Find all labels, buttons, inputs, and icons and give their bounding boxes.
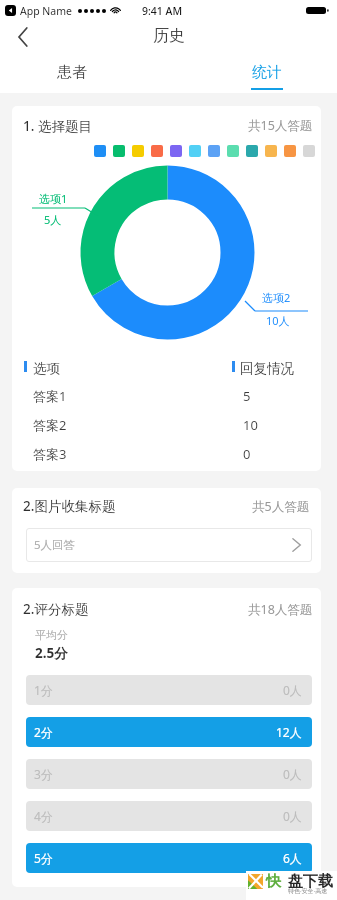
- staticText: 10: [243, 416, 258, 434]
- staticText: 0人: [283, 682, 302, 698]
- button[interactable]: 统计: [229, 58, 304, 93]
- staticText: 5人: [44, 212, 62, 227]
- button[interactable]: 2分: [26, 717, 312, 747]
- staticText: 5: [243, 387, 251, 405]
- staticText: 选项: [33, 360, 60, 377]
- button[interactable]: 5人回答: [26, 528, 312, 562]
- staticText: 答案1: [33, 387, 67, 405]
- staticText: 10人: [266, 313, 290, 328]
- staticText: 答案3: [33, 445, 67, 463]
- staticText: 回复情况: [240, 360, 294, 377]
- staticText: 5人回答: [34, 537, 76, 553]
- button[interactable]: 患者: [34, 58, 109, 93]
- staticText: 患者: [57, 63, 87, 82]
- staticText: 快: [266, 872, 281, 891]
- staticText: 2.5分: [35, 644, 68, 662]
- button[interactable]: Back: [9, 23, 37, 51]
- staticText: 2分: [34, 724, 53, 740]
- button[interactable]: 3分: [26, 759, 312, 789]
- staticText: 答案2: [33, 416, 67, 434]
- staticText: 0: [243, 445, 251, 463]
- button[interactable]: 5分: [26, 843, 312, 873]
- staticText: 12人: [276, 724, 302, 740]
- staticText: 9:41 AM: [142, 4, 183, 18]
- staticText: 历史: [153, 26, 185, 46]
- staticText: 选项1: [39, 191, 68, 206]
- button[interactable]: 4分: [26, 801, 312, 831]
- staticText: 6人: [283, 850, 302, 866]
- staticText: 2.评分标题: [23, 600, 89, 618]
- staticText: 0人: [283, 766, 302, 782]
- staticText: 统计: [252, 63, 282, 82]
- staticText: 0人: [283, 808, 302, 824]
- button[interactable]: 1分: [26, 675, 312, 705]
- staticText: 4分: [34, 808, 53, 824]
- staticText: 选项2: [262, 290, 291, 305]
- staticText: 盘下载: [288, 872, 333, 891]
- staticText: App Name: [20, 4, 72, 18]
- staticText: 特色·安全·高速: [288, 887, 328, 895]
- staticText: 5分: [34, 850, 53, 866]
- staticText: 1. 选择题目: [23, 117, 92, 135]
- staticText: 2.图片收集标题: [23, 497, 116, 515]
- staticText: 3分: [34, 766, 53, 782]
- staticText: 平均分: [35, 628, 68, 642]
- staticText: 共5人答题: [252, 498, 310, 515]
- staticText: 共15人答题: [248, 117, 313, 134]
- staticText: 1分: [34, 682, 53, 698]
- staticText: 共18人答题: [248, 601, 313, 618]
